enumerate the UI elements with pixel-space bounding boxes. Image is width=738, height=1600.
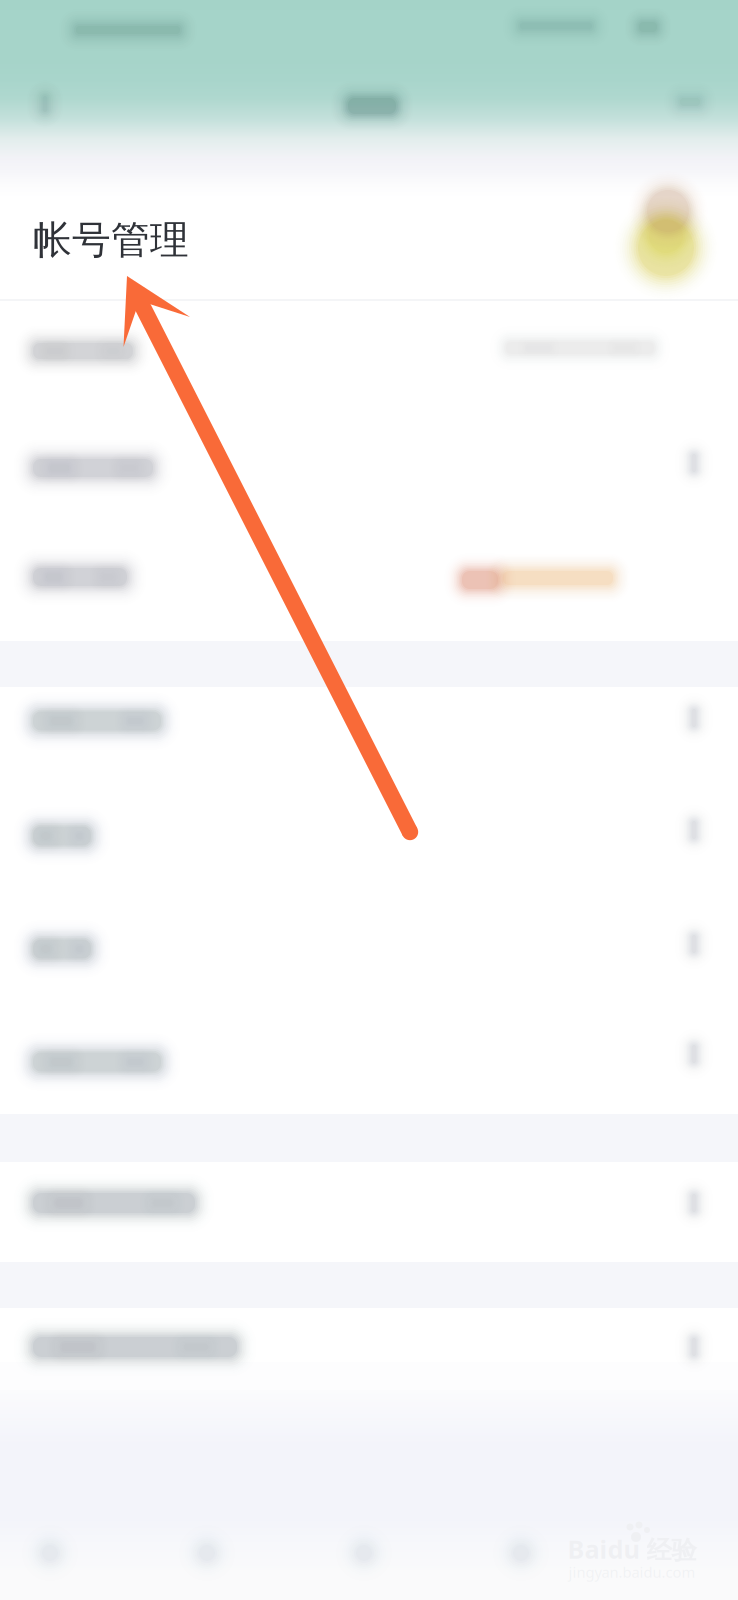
staticText: Baidu 经验 — [567, 1532, 696, 1566]
button[interactable]: 帐号管理 — [33, 213, 373, 267]
staticText: 帐号管理 — [33, 216, 189, 264]
